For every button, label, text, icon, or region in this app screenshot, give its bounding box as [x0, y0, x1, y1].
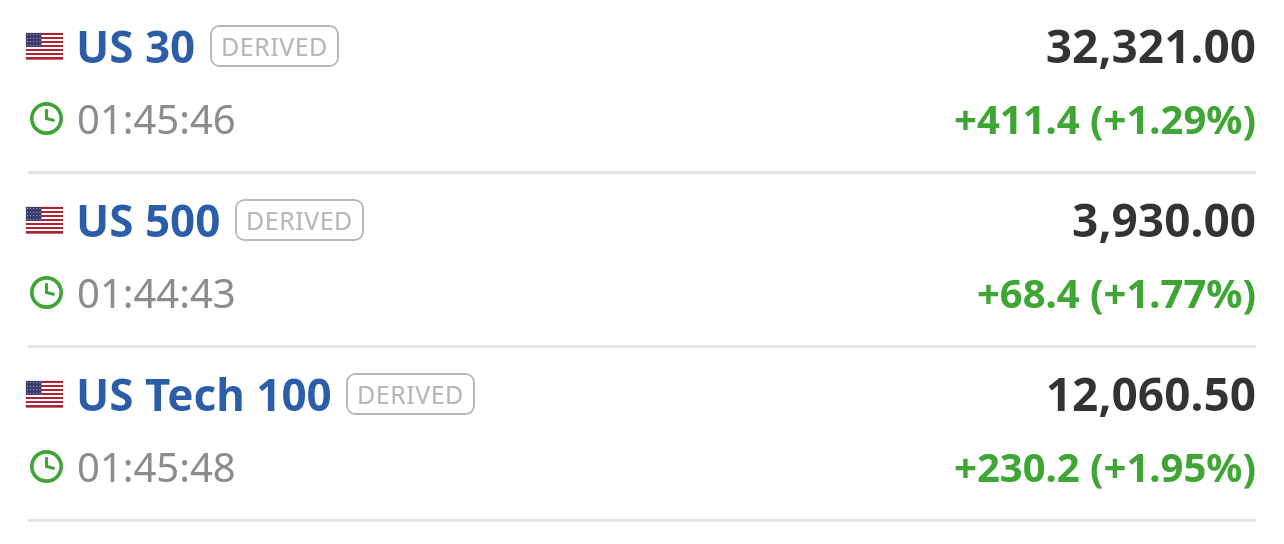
staticText: US 500	[76, 190, 221, 250]
staticText: DERIVED	[357, 377, 464, 411]
staticText: DERIVED	[221, 29, 328, 63]
staticText: +68.4 (+1.77%)	[976, 265, 1256, 319]
staticText: 01:45:46	[77, 91, 236, 145]
staticText: US Tech 100	[76, 364, 332, 424]
button[interactable]: United States	[0, 348, 1284, 519]
other: United States	[26, 381, 63, 407]
staticText: 01:44:43	[77, 265, 236, 319]
staticText: +411.4 (+1.29%)	[954, 91, 1256, 145]
staticText: 12,060.50	[1045, 362, 1256, 425]
other: Market open time	[30, 102, 63, 135]
button[interactable]: United States	[0, 0, 1284, 171]
staticText: +230.2 (+1.95%)	[954, 439, 1256, 493]
staticText: DERIVED	[246, 203, 353, 237]
other: United States	[26, 207, 63, 233]
staticText: 32,321.00	[1045, 14, 1256, 77]
other: United States	[26, 33, 63, 59]
button[interactable]: United States	[0, 174, 1284, 345]
staticText: US 30	[76, 16, 196, 76]
other: Market open time	[30, 276, 63, 309]
staticText: 01:45:48	[77, 439, 236, 493]
staticText: 3,930.00	[1072, 188, 1256, 251]
other: Market open time	[30, 450, 63, 483]
